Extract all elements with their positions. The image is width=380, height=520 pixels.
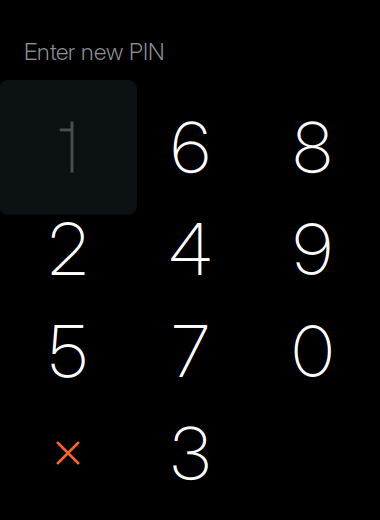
staticText: 2 — [48, 205, 87, 292]
staticText: 3 — [170, 409, 210, 496]
button[interactable]: 7 — [121, 284, 259, 418]
button[interactable]: 8 — [243, 80, 380, 214]
staticText: 9 — [293, 205, 332, 292]
button[interactable]: 3 — [121, 386, 259, 520]
button[interactable]: 0 — [243, 284, 380, 418]
staticText: 5 — [49, 307, 87, 394]
staticText: Enter new PIN — [24, 37, 165, 66]
staticText: 4 — [169, 205, 212, 292]
staticText: 6 — [171, 103, 210, 190]
button[interactable] — [0, 80, 136, 214]
staticText: 8 — [293, 103, 332, 190]
staticText: 0 — [292, 307, 333, 394]
button[interactable]: 2 — [0, 182, 137, 316]
staticText: 7 — [172, 307, 209, 394]
button[interactable]: Delete — [0, 386, 137, 520]
button[interactable]: 4 — [121, 182, 259, 316]
button[interactable]: 9 — [243, 182, 380, 316]
button[interactable]: 5 — [0, 284, 137, 418]
button[interactable]: 6 — [121, 80, 259, 214]
